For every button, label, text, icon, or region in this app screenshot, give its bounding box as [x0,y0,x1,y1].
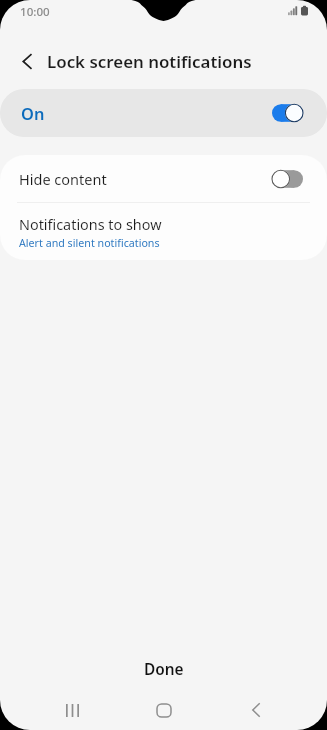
staticText: Lock screen notifications [47,50,252,73]
staticText: On [21,102,45,124]
staticText: 10:00 [20,4,50,20]
staticText: Alert and silent notifications [19,236,160,251]
button[interactable]: Done [0,652,327,686]
button[interactable]: Back [230,691,282,729]
button[interactable]: Home [138,691,190,729]
staticText: Done [144,659,184,680]
button[interactable]: Notifications to show [0,203,327,260]
staticText: Hide content [19,169,107,189]
button[interactable]: Back [9,43,45,79]
button[interactable]: On [0,89,327,137]
button[interactable]: Recents [46,691,98,729]
button[interactable]: Hide content [0,155,327,202]
staticText: Notifications to show [19,215,162,235]
